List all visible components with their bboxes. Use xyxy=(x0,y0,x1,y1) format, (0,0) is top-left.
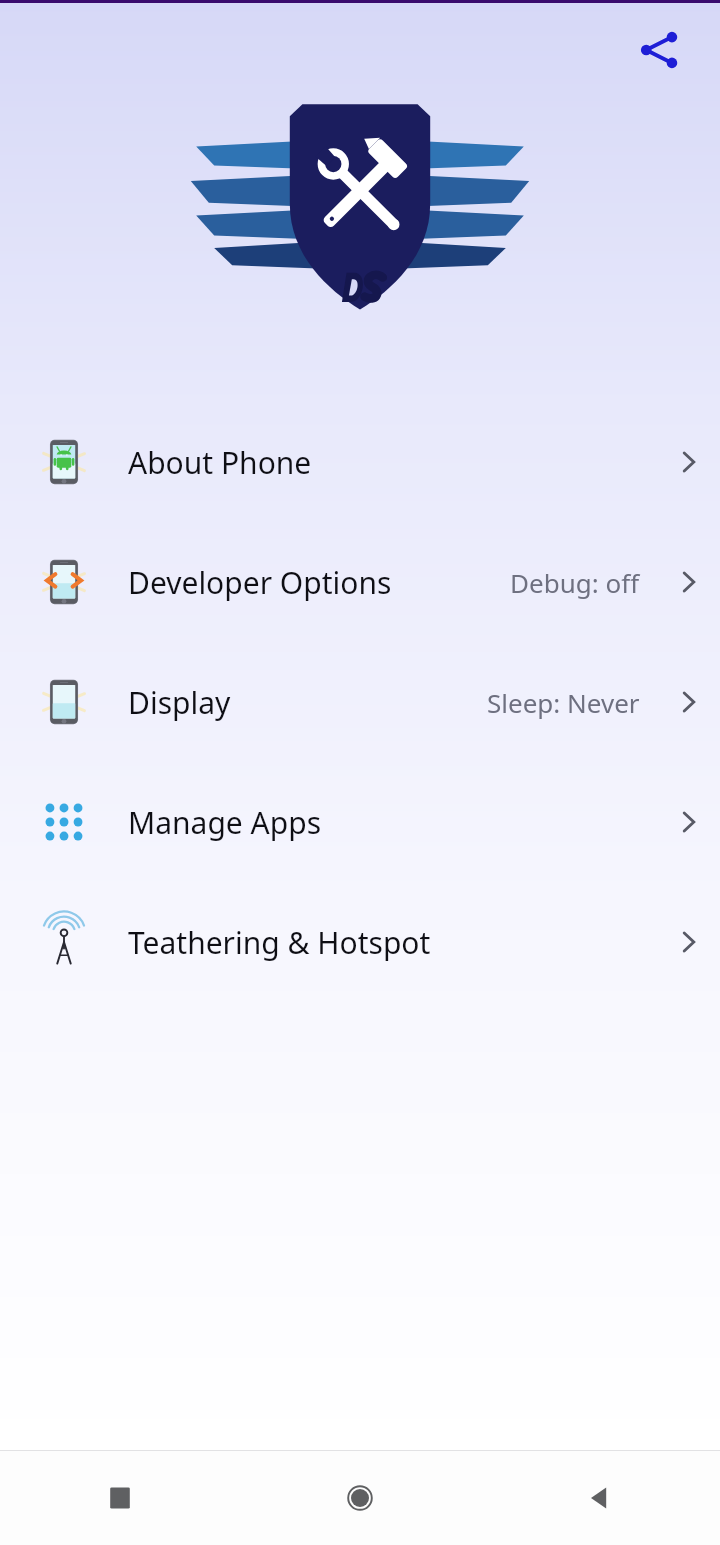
staticText: About Phone xyxy=(128,442,312,483)
button[interactable]: Manage Apps xyxy=(0,762,720,882)
staticText: Sleep: Never xyxy=(487,685,640,720)
button[interactable]: Display xyxy=(0,642,720,762)
button[interactable]: About Phone xyxy=(0,402,720,522)
staticText: Display xyxy=(128,682,231,723)
button[interactable]: Back xyxy=(480,1451,720,1545)
staticText: Manage Apps xyxy=(128,802,322,843)
button[interactable]: Teathering & Hotspot xyxy=(0,882,720,1002)
staticText: Debug: off xyxy=(510,565,640,600)
button[interactable]: Home xyxy=(240,1451,480,1545)
button[interactable]: Share xyxy=(624,14,696,86)
staticText: Teathering & Hotspot xyxy=(128,922,431,963)
button[interactable]: Developer Options xyxy=(0,522,720,642)
button[interactable]: Recents xyxy=(0,1451,240,1545)
staticText: Developer Options xyxy=(128,562,392,603)
